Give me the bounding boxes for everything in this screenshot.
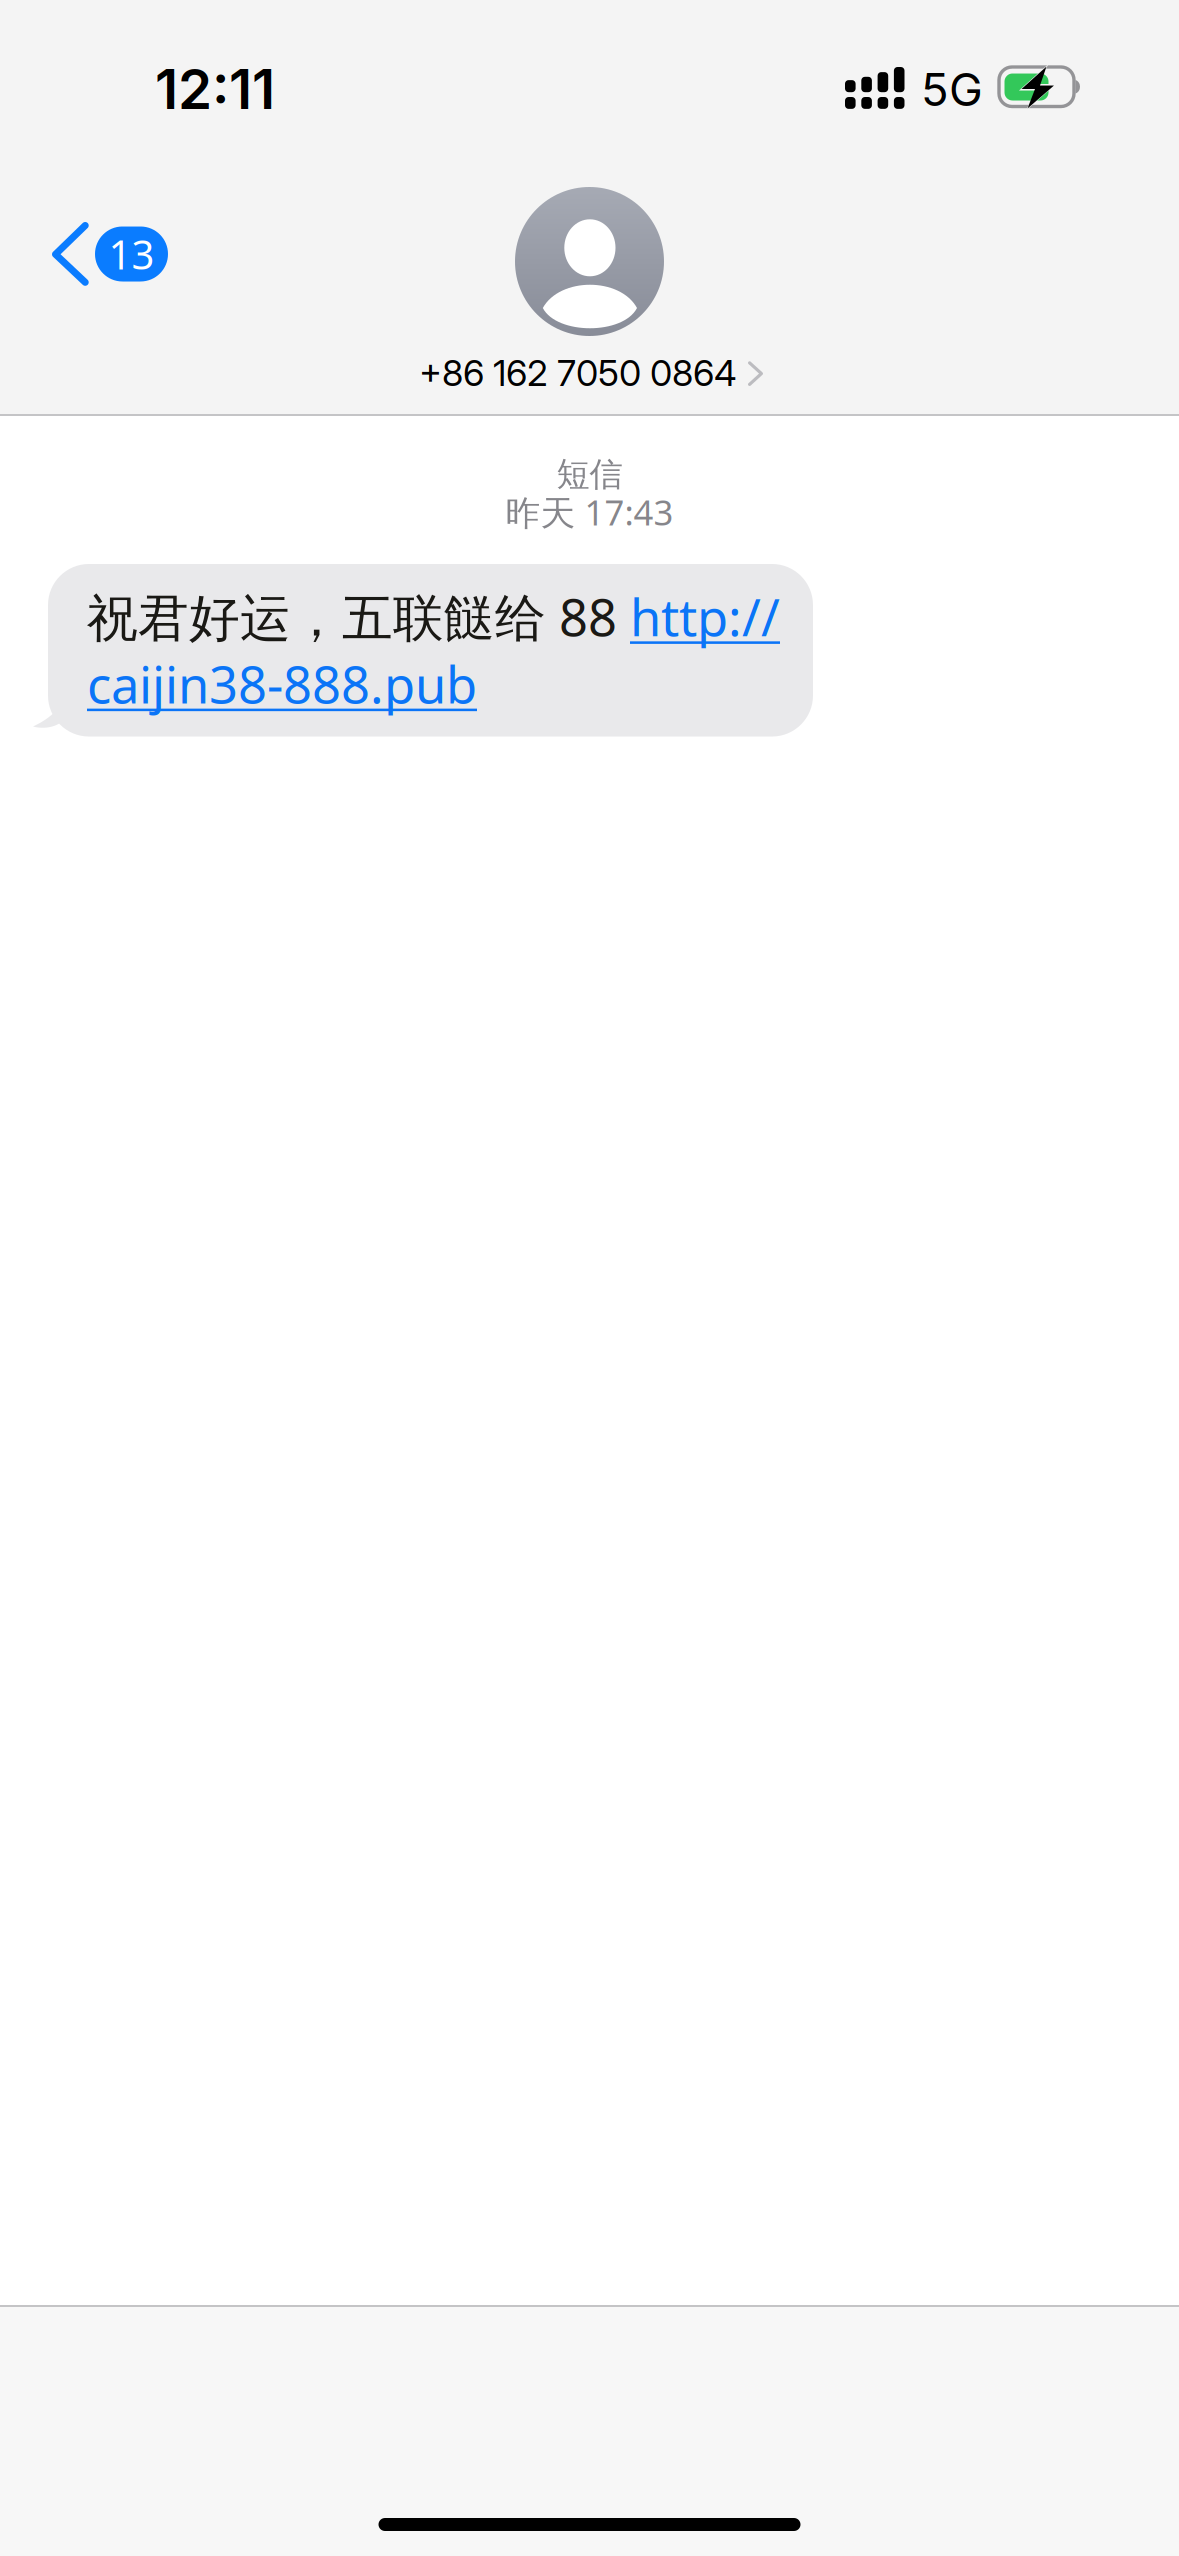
staticText: 祝君好运，五联餸给 88 http:// caijin38-888.pub [87,583,780,718]
staticText: 12:11 [155,56,275,122]
button[interactable]: +86 162 7050 0864 [396,187,783,403]
button[interactable]: Back, 13 unread [0,202,192,306]
staticText: 昨天 17:43 [505,489,673,535]
staticText: 短信 [556,454,622,495]
staticText: +86 162 7050 0864 [419,351,737,395]
staticText: 5G [921,62,983,117]
staticText: 13 [108,227,154,280]
